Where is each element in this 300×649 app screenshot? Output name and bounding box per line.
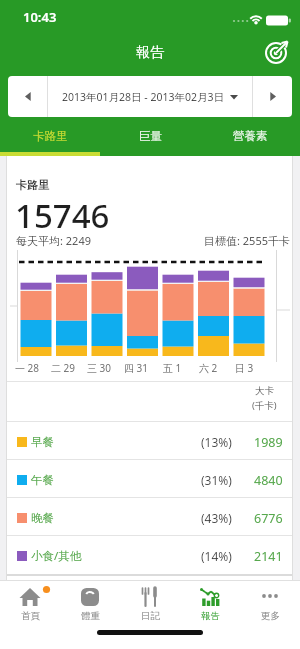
button[interactable]: 小食/其他 (0, 537, 292, 575)
button[interactable]: 早餐 (0, 423, 292, 461)
staticText: 小食/其他 (31, 548, 82, 564)
staticText: 10:43 (23, 8, 57, 26)
staticText: 目標值: 2555千卡 (204, 233, 290, 248)
button[interactable]: 巨量 (100, 119, 200, 152)
button[interactable]: 報告 (180, 584, 240, 626)
staticText: 日記 (141, 610, 160, 622)
staticText: 日 3 (235, 361, 254, 375)
staticText: (14%) (201, 548, 232, 564)
staticText: 巨量 (139, 129, 162, 143)
button[interactable]: 卡路里 (0, 119, 100, 152)
staticText: (31%) (201, 472, 232, 488)
staticText: 五 1 (163, 361, 182, 375)
staticText: 午餐 (31, 473, 54, 487)
staticText: 體重 (81, 610, 100, 622)
staticText: 每天平均: 2249 (16, 233, 91, 248)
staticText: 六 2 (199, 361, 218, 375)
button[interactable]: 2013年01月28日 - 2013年02月3日 (48, 76, 252, 117)
button[interactable] (8, 76, 47, 117)
staticText: 報告 (201, 610, 220, 622)
staticText: 2141 (254, 548, 283, 565)
staticText: 15746 (15, 193, 110, 238)
staticText: (13%) (201, 434, 232, 450)
staticText: 早餐 (31, 435, 54, 449)
staticText: 6776 (254, 510, 283, 527)
staticText: 四 31 (124, 361, 149, 375)
button[interactable]: 更多 (240, 584, 300, 626)
staticText: 一 28 (15, 361, 40, 375)
staticText: 營養素 (233, 129, 268, 143)
staticText: 晚餐 (31, 511, 54, 525)
staticText: (千卡) (252, 399, 277, 412)
button[interactable]: 午餐 (0, 461, 292, 499)
button[interactable] (253, 76, 292, 117)
staticText: 大卡 (255, 385, 274, 397)
staticText: 二 29 (51, 361, 76, 375)
staticText: 4840 (254, 472, 283, 489)
button[interactable]: 日記 (120, 584, 180, 626)
button[interactable]: 體重 (60, 584, 120, 626)
staticText: 2013年01月28日 - 2013年02月3日 (62, 90, 224, 104)
button[interactable] (263, 39, 291, 67)
staticText: 卡路里 (33, 129, 68, 143)
button[interactable]: 晚餐 (0, 499, 292, 537)
staticText: (43%) (201, 510, 232, 526)
button[interactable]: 營養素 (200, 119, 300, 152)
button[interactable]: 首頁 (0, 584, 60, 626)
staticText: 三 30 (87, 361, 112, 375)
staticText: 1989 (254, 434, 283, 451)
staticText: 更多 (261, 610, 280, 622)
staticText: 首頁 (21, 610, 40, 622)
staticText: 卡路里 (16, 178, 49, 192)
staticText: 報告 (136, 44, 164, 62)
